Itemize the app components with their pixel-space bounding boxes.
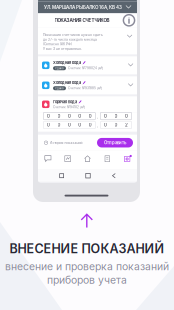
staticText: Холодная вода: [53, 80, 81, 85]
staticText: до 27-го числа каждого месяца: [43, 37, 97, 41]
staticText: 0: [78, 122, 81, 128]
staticText: ,: [97, 113, 98, 119]
staticText: 0: [78, 113, 81, 119]
staticText: 0: [57, 122, 60, 128]
staticText: 0: [104, 113, 107, 119]
staticText: 2: [125, 122, 128, 128]
staticText: Отправить: [104, 140, 126, 145]
staticText: Показания счетчиков нужно сдать: [43, 33, 103, 37]
staticText: приборов учета: [47, 274, 127, 286]
staticText: ,: [97, 122, 98, 128]
button[interactable]: Холодная вода: [38, 76, 137, 94]
staticText: Счетчик №798024 (м³): [68, 66, 103, 70]
staticText: Счетчик №931885 (м³): [68, 86, 102, 90]
button[interactable]: Отправить: [97, 138, 133, 147]
staticText: ПОКАЗАНИЯ СЧЕТЧИКОВ: [54, 18, 109, 23]
staticText: (Согласно ЖК РФ): [43, 42, 72, 46]
staticText: Сдано: [55, 67, 64, 70]
staticText: 0: [125, 113, 128, 119]
staticText: У вас 3 не отправлено.: [43, 47, 82, 51]
staticText: Холодная вода: [53, 60, 81, 65]
staticText: 0: [89, 113, 92, 119]
staticText: 0: [47, 122, 50, 128]
button[interactable]: Чат: [38, 151, 58, 170]
button[interactable]: Счета: [97, 151, 117, 170]
button[interactable]: Показания: [58, 151, 78, 170]
staticText: 0: [114, 122, 117, 128]
staticText: внесение и проверка показаний: [5, 260, 169, 273]
staticText: 0: [89, 122, 92, 128]
staticText: 0: [47, 113, 50, 119]
button[interactable]: Горячая вода: [38, 96, 137, 112]
staticText: 0: [68, 122, 71, 128]
button[interactable]: Дом: [78, 151, 97, 170]
staticText: 0: [68, 113, 71, 119]
staticText: 0: [114, 113, 117, 119]
button[interactable]: Приборы: [117, 151, 137, 170]
staticText: 0: [57, 113, 60, 119]
staticText: ВНЕСЕНИЕ ПОКАЗАНИЙ: [9, 241, 164, 256]
button[interactable]: Холодная вода: [38, 56, 137, 74]
staticText: История показаний: [49, 141, 82, 145]
button[interactable]: Информация: [126, 17, 132, 24]
staticText: Сдано: [55, 87, 64, 90]
staticText: Горячая вода: [53, 99, 77, 104]
staticText: УЛ. МАРШАЛА РЫБАЛКО 16А, КВ 43: [44, 5, 122, 10]
button[interactable]: История показаний: [42, 139, 84, 147]
staticText: Счетчик №94102 (м³): [53, 105, 85, 109]
staticText: 0: [104, 122, 107, 128]
